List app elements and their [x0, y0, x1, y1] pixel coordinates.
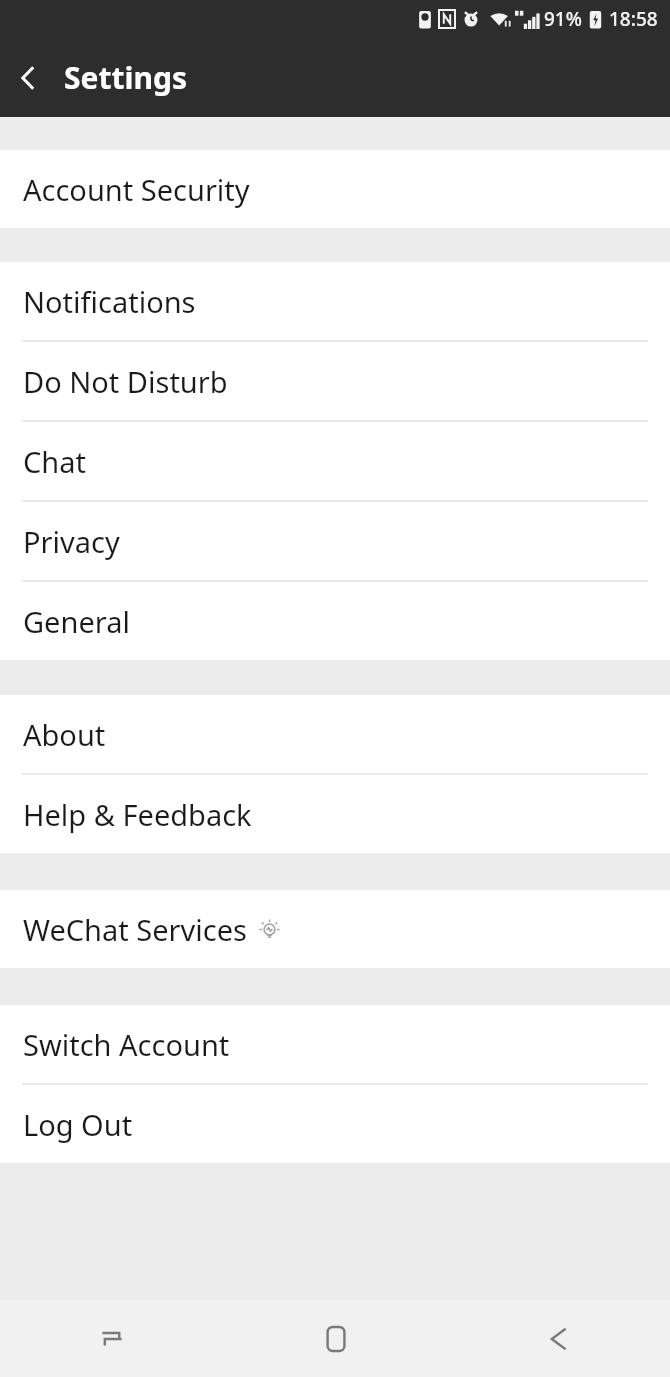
staticText: WeChat Services	[23, 910, 247, 949]
staticText: About	[23, 715, 106, 754]
staticText: 18:58	[609, 6, 658, 32]
button[interactable]: Switch Account	[0, 1005, 670, 1083]
button[interactable]: Account Security	[0, 150, 670, 228]
staticText: Log Out	[23, 1105, 133, 1144]
button[interactable]: Back	[447, 1300, 670, 1377]
staticText: Help & Feedback	[23, 795, 252, 834]
button[interactable]: WeChat Services	[0, 890, 670, 968]
button[interactable]: Chat	[0, 422, 670, 500]
button[interactable]: General	[0, 582, 670, 660]
button[interactable]: Back	[0, 50, 56, 106]
staticText: General	[23, 602, 130, 641]
button[interactable]: About	[0, 695, 670, 773]
staticText: Notifications	[23, 282, 196, 321]
button[interactable]: Privacy	[0, 502, 670, 580]
button[interactable]: Help & Feedback	[0, 775, 670, 853]
button[interactable]: Home	[224, 1300, 447, 1377]
button[interactable]: Log Out	[0, 1085, 670, 1163]
staticText: Chat	[23, 442, 86, 481]
button[interactable]: Recents	[0, 1300, 224, 1377]
button[interactable]: Do Not Disturb	[0, 342, 670, 420]
staticText: Switch Account	[23, 1025, 230, 1064]
staticText: Do Not Disturb	[23, 362, 228, 401]
button[interactable]: Notifications	[0, 262, 670, 340]
staticText: Settings	[64, 57, 187, 98]
staticText: 91%	[544, 6, 582, 32]
staticText: Account Security	[23, 170, 250, 209]
staticText: Privacy	[23, 522, 120, 561]
